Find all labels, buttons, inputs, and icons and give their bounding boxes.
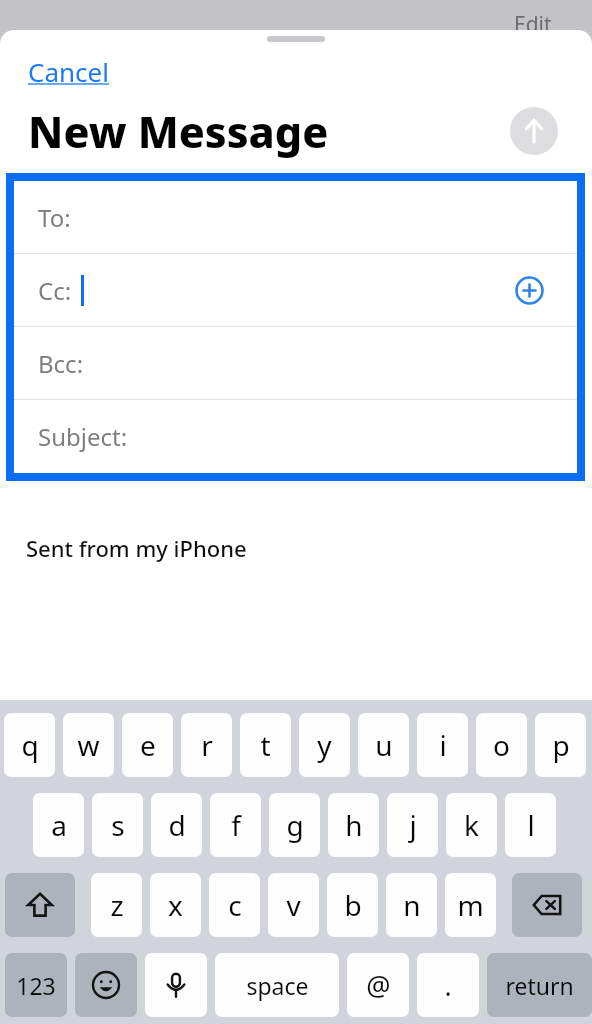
button[interactable]: e: [122, 713, 173, 777]
button[interactable]: o: [476, 713, 527, 777]
staticText: o: [493, 726, 510, 764]
button[interactable]: Cc:: [14, 254, 577, 326]
staticText: c: [228, 886, 242, 924]
staticText: k: [464, 806, 479, 844]
staticText: Bcc:: [38, 347, 84, 380]
staticText: s: [111, 806, 125, 844]
button[interactable]: g: [269, 793, 320, 857]
button[interactable]: h: [328, 793, 379, 857]
staticText: To:: [38, 201, 71, 234]
staticText: t: [260, 726, 271, 764]
button[interactable]: Emoji: [75, 953, 137, 1017]
button[interactable]: v: [268, 873, 319, 937]
button[interactable]: x: [150, 873, 201, 937]
button[interactable]: y: [299, 713, 350, 777]
button[interactable]: t: [240, 713, 291, 777]
button[interactable]: Bcc:: [14, 327, 577, 399]
button[interactable]: i: [417, 713, 468, 777]
staticText: z: [110, 886, 124, 924]
button[interactable]: f: [210, 793, 261, 857]
staticText: g: [286, 806, 304, 844]
button[interactable]: @: [347, 953, 409, 1017]
staticText: x: [168, 886, 183, 924]
button[interactable]: To:: [14, 181, 577, 253]
button[interactable]: 123: [5, 953, 67, 1017]
button[interactable]: space: [215, 953, 339, 1017]
button[interactable]: .: [417, 953, 479, 1017]
staticText: n: [403, 886, 421, 924]
staticText: @: [366, 967, 391, 1004]
staticText: r: [201, 726, 213, 764]
button[interactable]: Shift: [5, 873, 75, 937]
button[interactable]: Subject:: [14, 400, 577, 472]
button[interactable]: j: [387, 793, 438, 857]
button[interactable]: q: [4, 713, 55, 777]
staticText: h: [345, 806, 363, 844]
staticText: b: [344, 886, 362, 924]
button[interactable]: return: [487, 953, 592, 1017]
staticText: q: [21, 726, 39, 764]
staticText: p: [552, 726, 570, 764]
button[interactable]: u: [358, 713, 409, 777]
button[interactable]: Cancel: [28, 54, 109, 89]
button[interactable]: Send: [510, 107, 558, 155]
staticText: m: [457, 886, 484, 924]
staticText: 123: [16, 970, 56, 1001]
button[interactable]: r: [181, 713, 232, 777]
staticText: u: [375, 726, 393, 764]
button[interactable]: p: [535, 713, 586, 777]
staticText: Subject:: [38, 420, 128, 453]
staticText: Sent from my iPhone: [26, 533, 247, 563]
button[interactable]: k: [446, 793, 497, 857]
staticText: .: [444, 967, 452, 1004]
button[interactable]: s: [92, 793, 143, 857]
staticText: New Message: [28, 102, 329, 161]
button[interactable]: a: [33, 793, 84, 857]
staticText: l: [527, 806, 535, 844]
button[interactable]: w: [63, 713, 114, 777]
staticText: f: [231, 806, 241, 844]
button[interactable]: m: [445, 873, 496, 937]
staticText: y: [317, 726, 332, 764]
button[interactable]: z: [91, 873, 142, 937]
button[interactable]: Dictation: [145, 953, 207, 1017]
staticText: Cc:: [38, 274, 72, 307]
staticText: a: [51, 806, 67, 844]
staticText: i: [439, 726, 447, 764]
staticText: Cancel: [28, 54, 109, 89]
staticText: return: [505, 970, 574, 1001]
staticText: w: [77, 726, 100, 764]
button[interactable]: Backspace: [512, 873, 582, 937]
staticText: d: [168, 806, 186, 844]
button[interactable]: c: [209, 873, 260, 937]
button[interactable]: l: [505, 793, 556, 857]
staticText: space: [246, 970, 309, 1001]
button[interactable]: Add recipient: [511, 272, 547, 308]
button[interactable]: n: [386, 873, 437, 937]
staticText: e: [140, 726, 156, 764]
staticText: j: [409, 806, 417, 844]
staticText: Edit: [514, 10, 552, 39]
button[interactable]: b: [327, 873, 378, 937]
button[interactable]: d: [151, 793, 202, 857]
staticText: v: [286, 886, 301, 924]
